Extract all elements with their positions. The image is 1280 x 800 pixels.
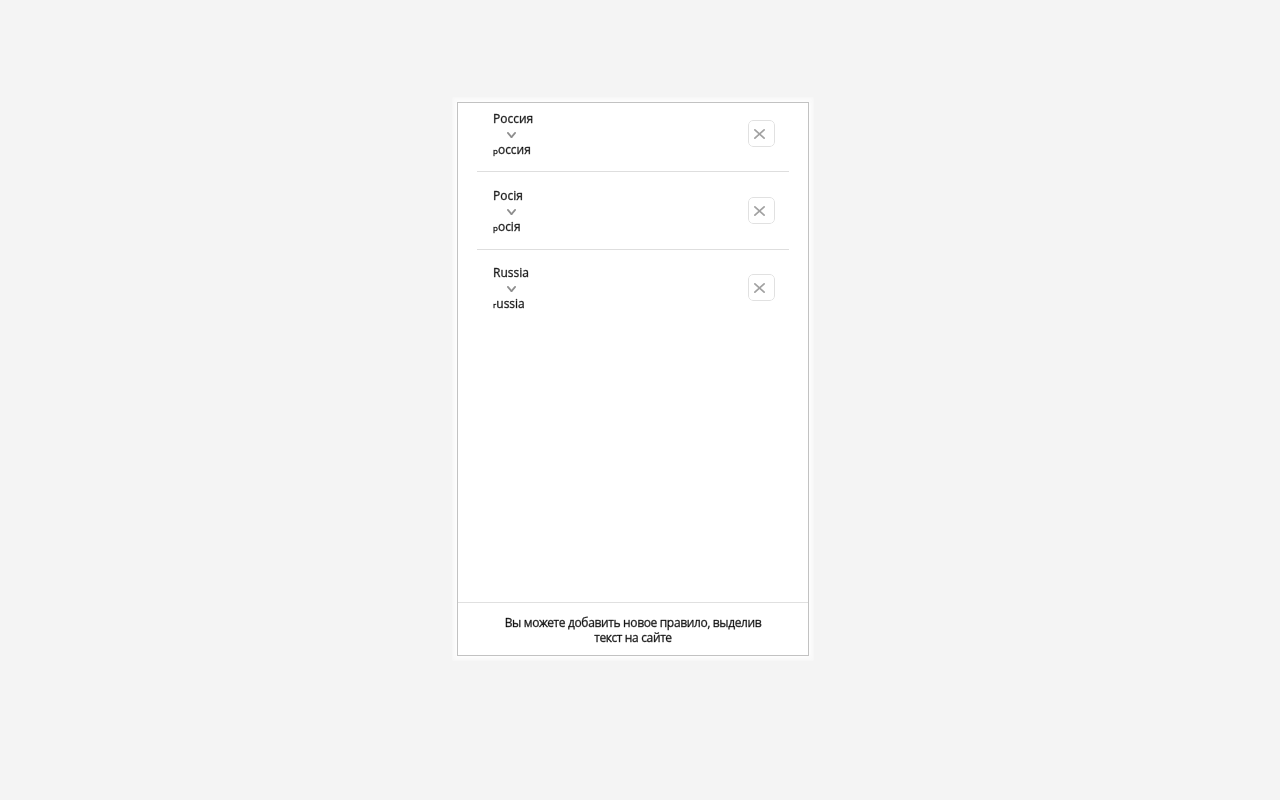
button[interactable]: Delete rule [748, 120, 775, 147]
staticText: Росія [493, 187, 523, 203]
other: Replaced with [507, 286, 516, 292]
button[interactable]: Россия [457, 102, 809, 171]
staticText: россия [493, 141, 531, 157]
staticText: russia [493, 295, 525, 311]
staticText: Russia [493, 264, 529, 280]
other: Replaced with [507, 132, 516, 138]
staticText: Вы можете добавить новое правило, выдели… [504, 614, 762, 645]
staticText: russia [493, 295, 525, 311]
staticText: Россия [493, 110, 534, 126]
other: Replaced with [507, 209, 516, 215]
staticText: россия [493, 141, 531, 157]
button[interactable]: Russia [457, 250, 809, 327]
staticText: росія [493, 218, 521, 234]
button[interactable]: Delete rule [748, 274, 775, 301]
button[interactable]: Росія [457, 172, 809, 249]
staticText: Россия [493, 110, 534, 126]
staticText: Russia [493, 264, 529, 280]
staticText: росія [493, 218, 521, 234]
button[interactable]: Delete rule [748, 197, 775, 224]
staticText: Вы можете добавить новое правило, выдели… [504, 614, 762, 645]
staticText: Росія [493, 187, 523, 203]
